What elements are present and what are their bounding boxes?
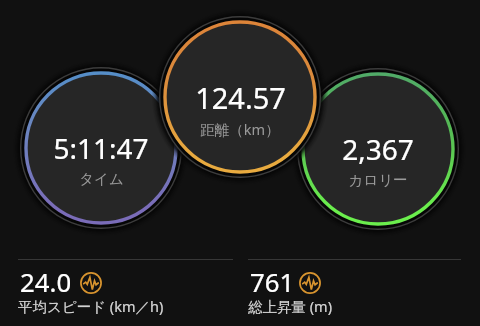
staticText: 761: [250, 264, 295, 299]
button[interactable]: 761: [248, 259, 461, 326]
staticText: 距離（km）: [200, 119, 280, 139]
staticText: カロリー: [348, 171, 408, 189]
staticText: 総上昇量 (m): [248, 296, 333, 316]
button[interactable]: 24.0: [18, 259, 233, 326]
button[interactable]: [159, 16, 321, 178]
button[interactable]: [297, 68, 459, 230]
staticText: 平均スピード (km／h): [18, 296, 164, 316]
staticText: 24.0: [20, 264, 72, 299]
staticText: 5:11:47: [53, 129, 149, 167]
staticText: 2,367: [342, 130, 414, 168]
staticText: 124.57: [195, 78, 286, 117]
button[interactable]: [20, 67, 182, 229]
staticText: タイム: [79, 170, 124, 188]
